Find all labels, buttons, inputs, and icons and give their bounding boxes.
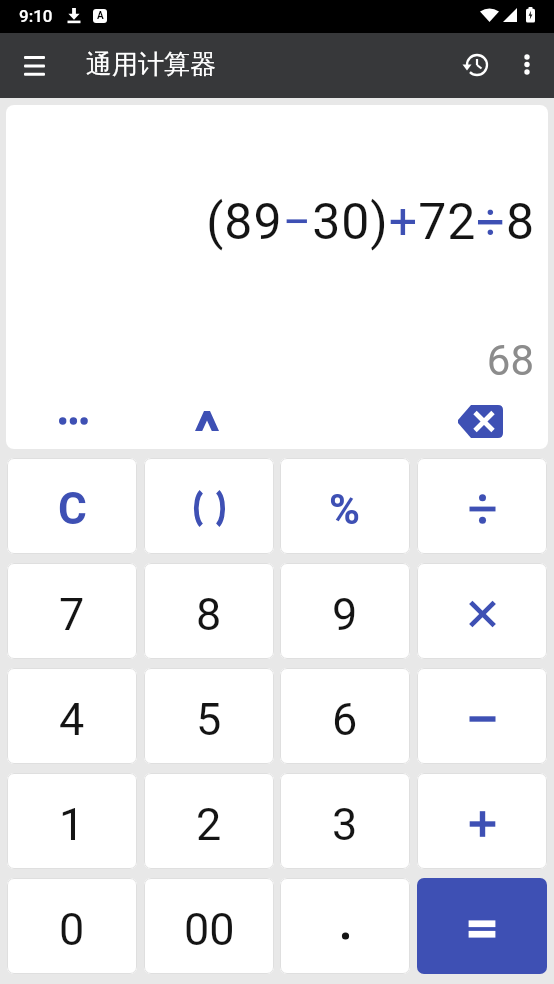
staticText: A: [97, 10, 104, 22]
button[interactable]: [417, 458, 547, 554]
staticText: 通用计算器: [86, 48, 216, 81]
button[interactable]: 5: [144, 668, 274, 764]
staticText: 8: [196, 588, 222, 641]
button[interactable]: 0: [7, 878, 137, 974]
button[interactable]: 7: [7, 563, 137, 659]
button[interactable]: [452, 41, 500, 89]
staticText: 6: [332, 693, 358, 746]
staticText: C: [58, 483, 87, 535]
button[interactable]: [10, 51, 58, 81]
staticText: 2: [196, 798, 222, 851]
button[interactable]: 00: [144, 878, 274, 974]
staticText: 00: [184, 903, 235, 956]
staticText: 4: [59, 693, 85, 746]
button[interactable]: 6: [280, 668, 410, 764]
button[interactable]: [417, 878, 547, 974]
staticText: 5: [196, 693, 222, 746]
staticText: 0: [59, 903, 85, 956]
staticText: 7: [59, 588, 85, 641]
staticText: (89−30)+72÷8: [206, 193, 535, 252]
button[interactable]: 4: [7, 668, 137, 764]
button[interactable]: [417, 668, 547, 764]
button[interactable]: 8: [144, 563, 274, 659]
button[interactable]: 2: [144, 773, 274, 869]
button[interactable]: [417, 563, 547, 659]
button[interactable]: [280, 878, 410, 974]
button[interactable]: [505, 40, 549, 88]
staticText: 68: [486, 336, 534, 385]
staticText: 9: [332, 588, 358, 641]
button[interactable]: [36, 395, 111, 447]
button[interactable]: 1: [7, 773, 137, 869]
button[interactable]: 9: [280, 563, 410, 659]
button[interactable]: %: [280, 458, 410, 554]
button[interactable]: [144, 458, 274, 554]
staticText: 1: [59, 798, 85, 851]
staticText: 9:10: [19, 6, 53, 26]
button[interactable]: [417, 773, 547, 869]
button[interactable]: [444, 395, 516, 447]
staticText: %: [329, 485, 361, 534]
button[interactable]: [171, 395, 243, 447]
button[interactable]: 3: [280, 773, 410, 869]
button[interactable]: C: [7, 458, 137, 554]
staticText: 3: [332, 798, 358, 851]
